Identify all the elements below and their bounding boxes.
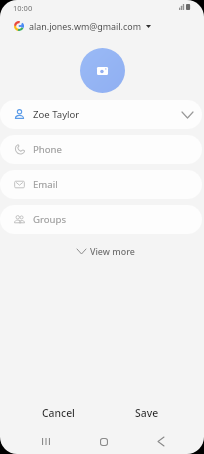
staticText: View more bbox=[90, 245, 135, 257]
staticText: Zoe Taylor bbox=[33, 108, 80, 121]
button[interactable]: Phone bbox=[0, 135, 202, 164]
button[interactable]: Zoe Taylor bbox=[0, 100, 202, 129]
button[interactable]: Home bbox=[75, 429, 132, 454]
button[interactable]: Add photo bbox=[80, 48, 125, 93]
staticText: Groups bbox=[33, 213, 66, 226]
button[interactable]: Groups bbox=[0, 205, 202, 234]
button[interactable]: Email bbox=[0, 170, 202, 199]
staticText: Cancel bbox=[42, 406, 75, 420]
staticText: Phone bbox=[33, 143, 62, 156]
staticText: Save bbox=[135, 406, 159, 420]
staticText: 10:00 bbox=[13, 3, 33, 13]
button[interactable]: alan.jones.wm@gmail.com bbox=[0, 16, 204, 38]
button[interactable]: Back bbox=[132, 429, 189, 454]
button[interactable]: Recent apps bbox=[17, 429, 75, 454]
button[interactable]: Save bbox=[126, 401, 168, 425]
button[interactable]: Cancel bbox=[33, 401, 84, 425]
button[interactable]: View more bbox=[72, 240, 140, 262]
staticText: Email bbox=[33, 178, 58, 191]
staticText: alan.jones.wm@gmail.com bbox=[29, 20, 141, 32]
